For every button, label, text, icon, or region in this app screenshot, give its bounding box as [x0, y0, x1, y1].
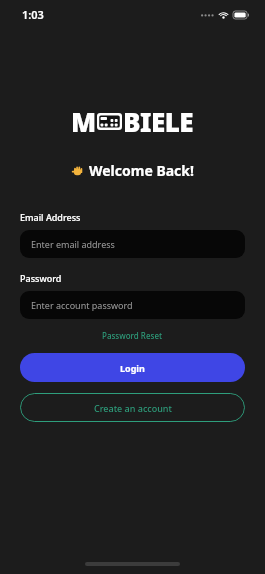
staticText: Create an account	[94, 402, 172, 414]
button[interactable]: Create an account	[20, 393, 245, 422]
button[interactable]: Login	[20, 353, 245, 382]
staticText: Password	[20, 272, 62, 284]
button[interactable]: Enter email address	[20, 230, 245, 258]
staticText: 1:03	[22, 7, 44, 22]
staticText: Enter email address	[31, 238, 115, 250]
staticText: Login	[120, 362, 145, 374]
staticText: Password Reset	[102, 330, 163, 341]
button[interactable]: Password Reset	[98, 328, 167, 343]
staticText: Email Address	[20, 211, 81, 223]
staticText: BIELE	[123, 104, 194, 139]
staticText: M	[71, 104, 96, 139]
button[interactable]: Enter account password	[20, 291, 245, 319]
staticText: Enter account password	[31, 299, 133, 311]
staticText: Welcome Back!	[89, 161, 194, 180]
